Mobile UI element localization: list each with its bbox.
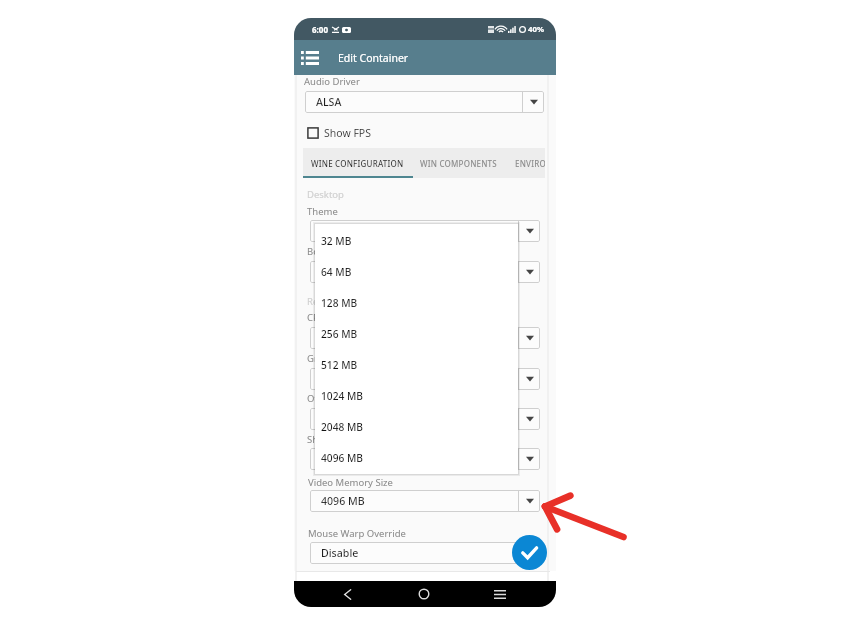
button[interactable]: 32 MB bbox=[315, 225, 518, 256]
staticText: 32 MB bbox=[321, 234, 352, 248]
button[interactable]: WIN COMPONENTS bbox=[412, 148, 505, 178]
staticText: WIN COMPONENTS bbox=[420, 158, 497, 169]
button[interactable]: 512 MB bbox=[315, 349, 518, 380]
staticText: 128 MB bbox=[321, 296, 358, 310]
button[interactable]: Disable bbox=[310, 542, 540, 564]
button[interactable]: Back bbox=[335, 582, 359, 606]
button[interactable]: 4096 MB bbox=[315, 442, 518, 473]
staticText: Show FPS bbox=[324, 126, 371, 140]
button[interactable]: Home bbox=[412, 582, 436, 606]
staticText: Mouse Warp Override bbox=[308, 527, 406, 540]
button[interactable] bbox=[310, 408, 540, 430]
button[interactable]: 1024 MB bbox=[315, 380, 518, 411]
button[interactable]: ALSA bbox=[305, 91, 544, 113]
staticText: Offscreen Rendering bbox=[307, 392, 400, 405]
staticText bbox=[321, 331, 518, 345]
staticText: Desktop bbox=[307, 188, 344, 201]
button[interactable] bbox=[310, 448, 540, 470]
staticText: Disable bbox=[321, 546, 518, 560]
staticText: Shader Backend bbox=[307, 433, 380, 446]
staticText bbox=[321, 265, 518, 279]
staticText: 40% bbox=[528, 24, 544, 35]
staticText bbox=[321, 224, 518, 238]
staticText: Graphics Driver bbox=[307, 352, 377, 365]
button[interactable]: Show FPS bbox=[307, 126, 371, 140]
staticText: Edit Container bbox=[338, 51, 409, 65]
staticText bbox=[321, 452, 518, 466]
button[interactable]: ENVIRO bbox=[505, 148, 545, 178]
staticText: 4096 MB bbox=[321, 494, 518, 508]
staticText: Audio Driver bbox=[304, 75, 360, 88]
staticText: CPU Cores bbox=[307, 311, 354, 324]
staticText: 256 MB bbox=[321, 327, 358, 341]
staticText: 1024 MB bbox=[321, 389, 363, 403]
button[interactable]: Save bbox=[512, 535, 547, 570]
staticText: 64 MB bbox=[321, 265, 352, 279]
button[interactable]: 4096 MB bbox=[310, 490, 540, 512]
staticText: 4096 MB bbox=[321, 451, 363, 465]
staticText: ENVIRO bbox=[515, 158, 545, 169]
staticText: 6:00 bbox=[312, 24, 328, 35]
button[interactable]: 64 MB bbox=[315, 256, 518, 287]
staticText: Theme bbox=[307, 205, 338, 218]
button[interactable] bbox=[310, 261, 540, 283]
button[interactable] bbox=[310, 327, 540, 349]
button[interactable]: Recent apps bbox=[488, 582, 512, 606]
button[interactable]: Open navigation menu bbox=[298, 46, 322, 70]
staticText bbox=[321, 412, 518, 426]
staticText: 512 MB bbox=[321, 358, 358, 372]
staticText: ALSA bbox=[316, 95, 522, 109]
button[interactable] bbox=[310, 220, 540, 242]
staticText: Renderer bbox=[307, 295, 349, 308]
staticText: WINE CONFIGURATION bbox=[311, 158, 404, 169]
button[interactable]: 256 MB bbox=[315, 318, 518, 349]
button[interactable]: WINE CONFIGURATION bbox=[303, 148, 412, 178]
staticText: Video Memory Size bbox=[308, 476, 393, 489]
staticText: Box86 Preset bbox=[307, 245, 366, 258]
button[interactable]: 128 MB bbox=[315, 287, 518, 318]
button[interactable]: 2048 MB bbox=[315, 411, 518, 442]
staticText: 2048 MB bbox=[321, 420, 363, 434]
button[interactable] bbox=[310, 368, 540, 390]
